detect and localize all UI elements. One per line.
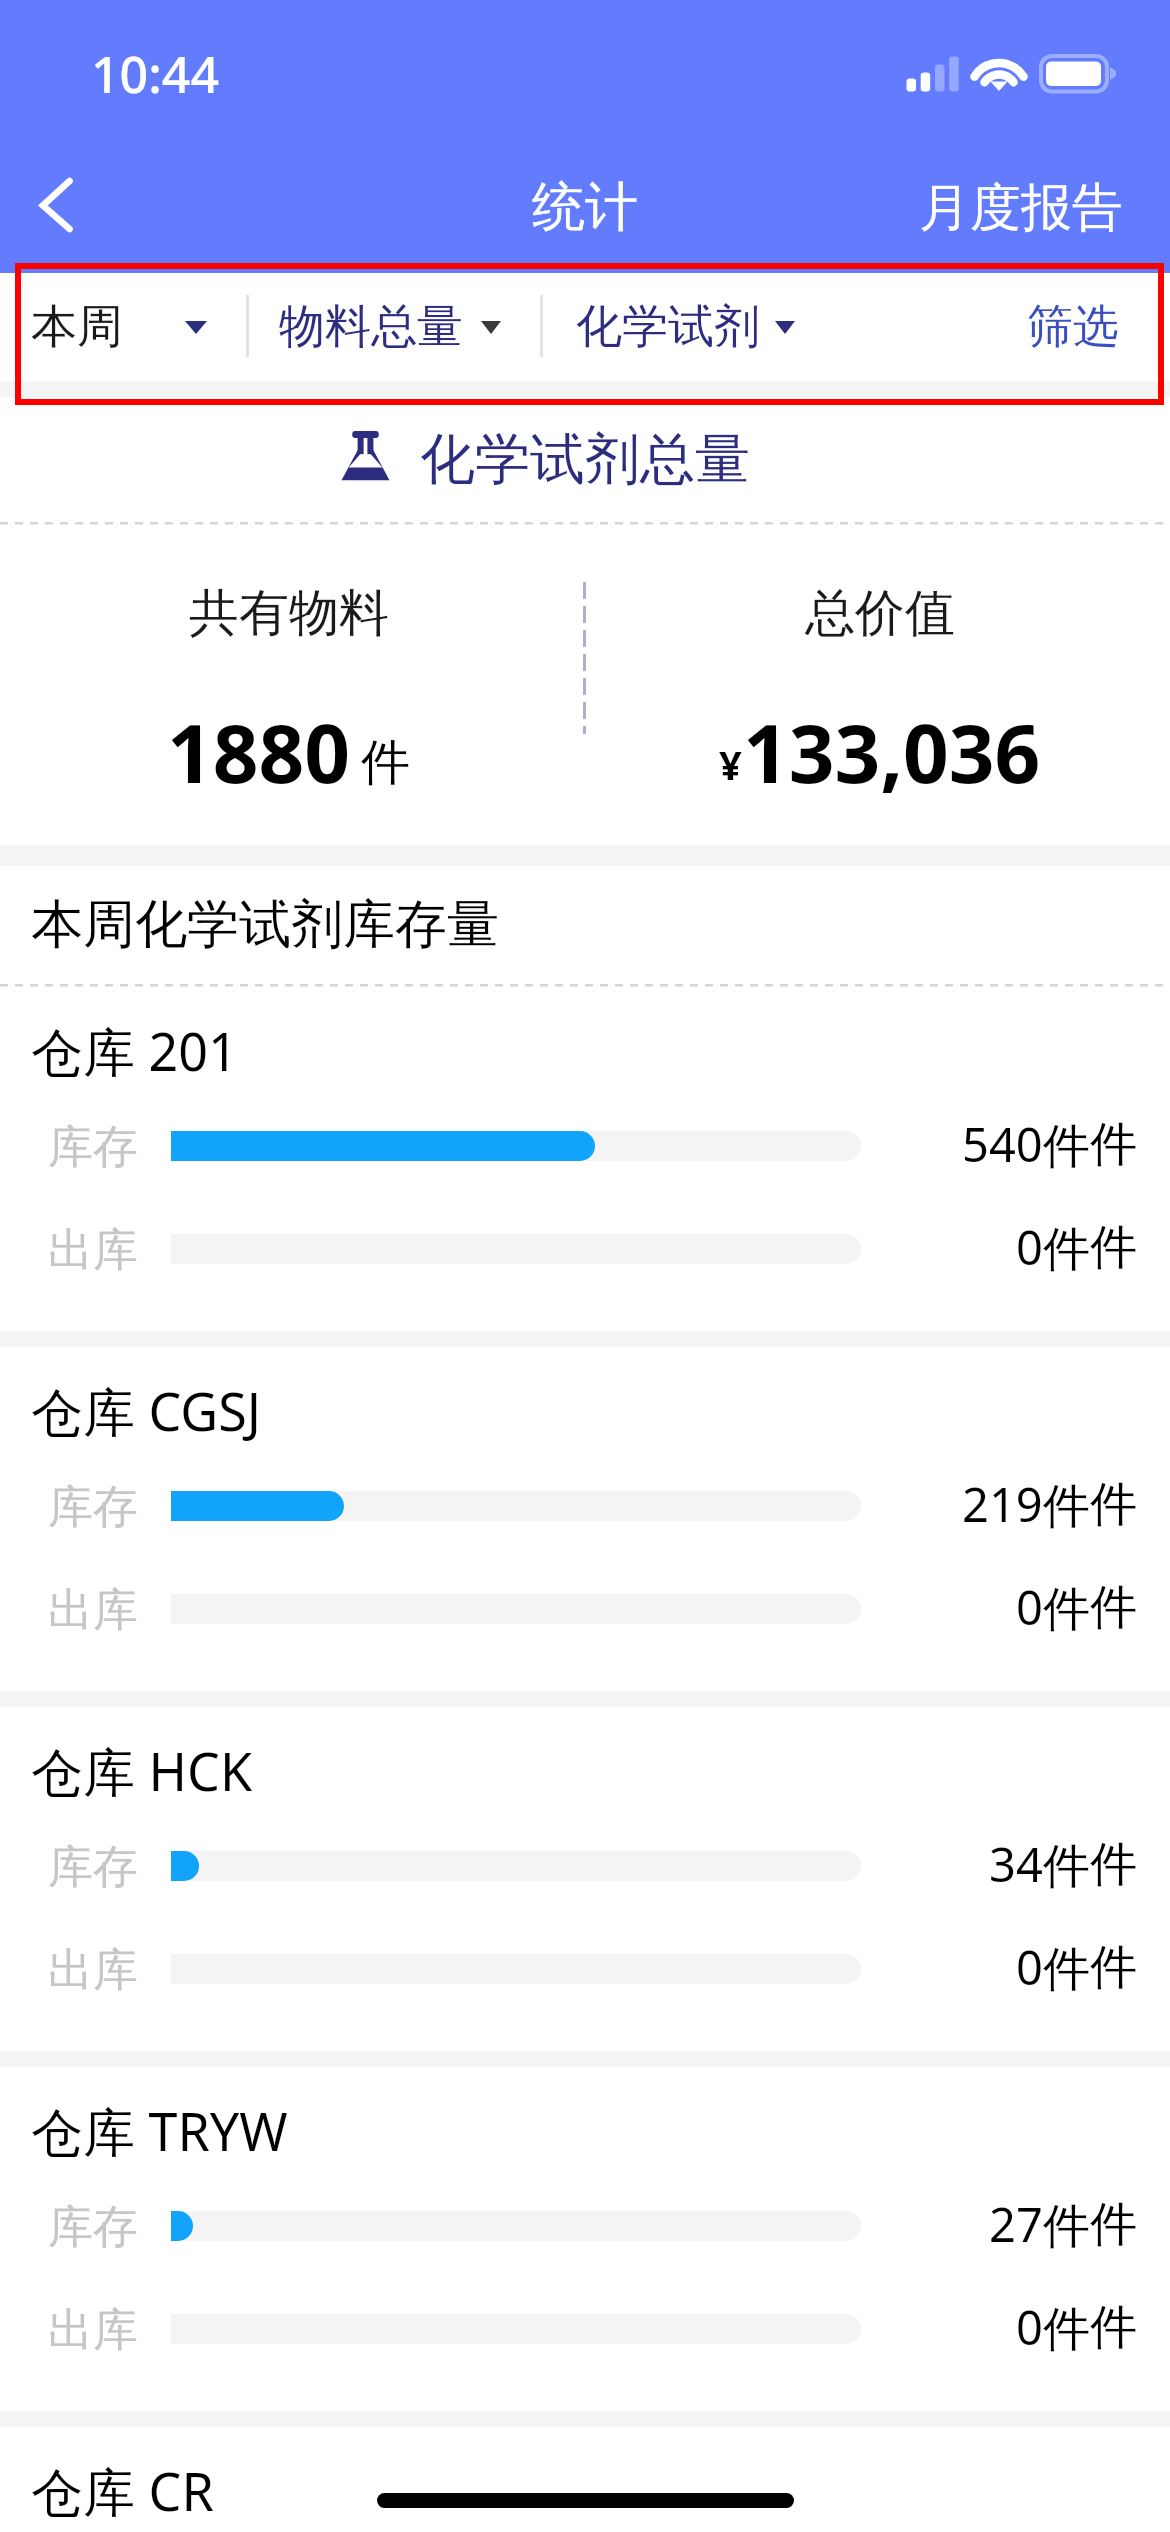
staticText: 件 <box>1090 1475 1137 1534</box>
staticText: 出库 <box>48 1222 138 1279</box>
staticText: 件 <box>1090 1578 1137 1637</box>
staticText: 仓库 CGSJ <box>31 1375 261 1446</box>
staticText: 件 <box>1090 1218 1137 1277</box>
staticText: 库存 <box>48 2199 138 2256</box>
staticText: 27件 <box>989 2192 1090 2256</box>
button[interactable]: 仓库 CR <box>0 2427 1170 2532</box>
staticText: 月度报告 <box>919 176 1123 240</box>
staticText: 540件 <box>962 1112 1090 1176</box>
staticText: 1880 <box>167 697 351 806</box>
staticText: 物料总量 <box>279 298 463 356</box>
staticText: 出库 <box>48 1942 138 1999</box>
staticText: 本周 <box>31 298 123 356</box>
staticText: 库存 <box>48 1119 138 1176</box>
button[interactable]: 仓库 HCK <box>0 1707 1170 2051</box>
button[interactable]: 仓库 TRYW <box>0 2067 1170 2411</box>
staticText: 10:44 <box>91 40 219 108</box>
staticText: 库存 <box>48 1839 138 1896</box>
staticText: 出库 <box>48 2302 138 2359</box>
staticText: ¥ <box>719 737 742 791</box>
staticText: 件 <box>1090 1115 1137 1174</box>
staticText: 本周化学试剂库存量 <box>31 892 499 958</box>
staticText: 出库 <box>48 1582 138 1639</box>
staticText: 筛选 <box>1027 298 1119 356</box>
button[interactable]: 化学试剂 <box>576 273 795 381</box>
staticText: 库存 <box>48 1479 138 1536</box>
staticText: 件 <box>1090 2298 1137 2357</box>
staticText: 0件 <box>1016 1575 1090 1639</box>
staticText: 0件 <box>1016 1215 1090 1279</box>
staticText: 133,036 <box>743 697 1041 806</box>
button[interactable]: 仓库 CGSJ <box>0 1347 1170 1691</box>
staticText: 件 <box>1090 1938 1137 1997</box>
button[interactable]: 仓库 201 <box>0 987 1170 1331</box>
staticText: 0件 <box>1016 1935 1090 1999</box>
staticText: 219件 <box>962 1472 1090 1536</box>
staticText: 仓库 CR <box>31 2455 214 2526</box>
staticText: 统计 <box>532 174 638 241</box>
staticText: 件 <box>1090 2195 1137 2254</box>
staticText: 34件 <box>989 1832 1090 1896</box>
button[interactable]: 月度报告 <box>905 170 1137 245</box>
staticText: 仓库 201 <box>31 1015 238 1086</box>
staticText: 化学试剂总量 <box>420 425 750 494</box>
staticText: 件 <box>361 732 410 794</box>
staticText: 仓库 TRYW <box>31 2095 288 2166</box>
staticText: 共有物料 <box>189 582 389 645</box>
staticText: 总价值 <box>805 582 955 645</box>
button[interactable]: 筛选 <box>1008 273 1138 381</box>
staticText: 化学试剂 <box>576 298 760 356</box>
button[interactable]: Back <box>16 155 116 255</box>
staticText: 仓库 HCK <box>31 1735 253 1806</box>
button[interactable]: 本周 <box>31 273 207 381</box>
staticText: 件 <box>1090 1835 1137 1894</box>
staticText: 0件 <box>1016 2295 1090 2359</box>
button[interactable]: 物料总量 <box>279 273 501 381</box>
button[interactable]: 统计 <box>500 170 670 245</box>
